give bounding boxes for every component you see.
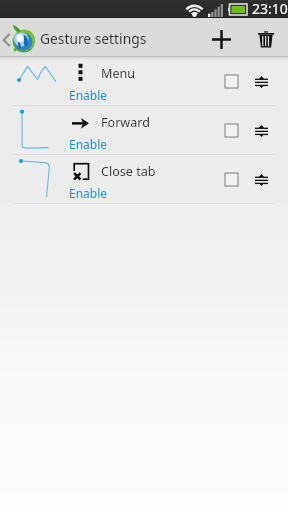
staticText: Close tab — [101, 163, 156, 180]
button[interactable]: Up — [0, 18, 150, 57]
button[interactable]: Enable — [69, 87, 108, 103]
staticText: Gesture settings — [40, 29, 147, 48]
button[interactable]: Select Forward — [218, 117, 245, 144]
button[interactable]: Enable — [69, 136, 108, 152]
button[interactable]: Menu — [0, 57, 288, 106]
staticText: 23:10 — [252, 0, 288, 17]
button[interactable]: Reorder Close tab — [248, 166, 275, 193]
button[interactable]: Select Close tab — [218, 166, 245, 193]
button[interactable]: Forward — [0, 106, 288, 155]
button[interactable]: Reorder Forward — [248, 117, 275, 144]
button[interactable]: Select Menu — [218, 68, 245, 95]
staticText: Forward — [101, 114, 151, 131]
button[interactable]: Enable — [69, 185, 108, 201]
button[interactable]: Close tab — [0, 155, 288, 204]
staticText: Menu — [101, 65, 136, 82]
button[interactable]: Add gesture — [202, 18, 243, 57]
button[interactable]: Delete — [243, 18, 288, 57]
button[interactable]: Reorder Menu — [248, 68, 275, 95]
